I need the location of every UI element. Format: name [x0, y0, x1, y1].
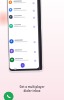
- staticText: Get a multiplayer: [19, 85, 45, 89]
- button[interactable]: Open app: [4, 91, 14, 100]
- staticText: dialer inbox: [23, 89, 41, 93]
